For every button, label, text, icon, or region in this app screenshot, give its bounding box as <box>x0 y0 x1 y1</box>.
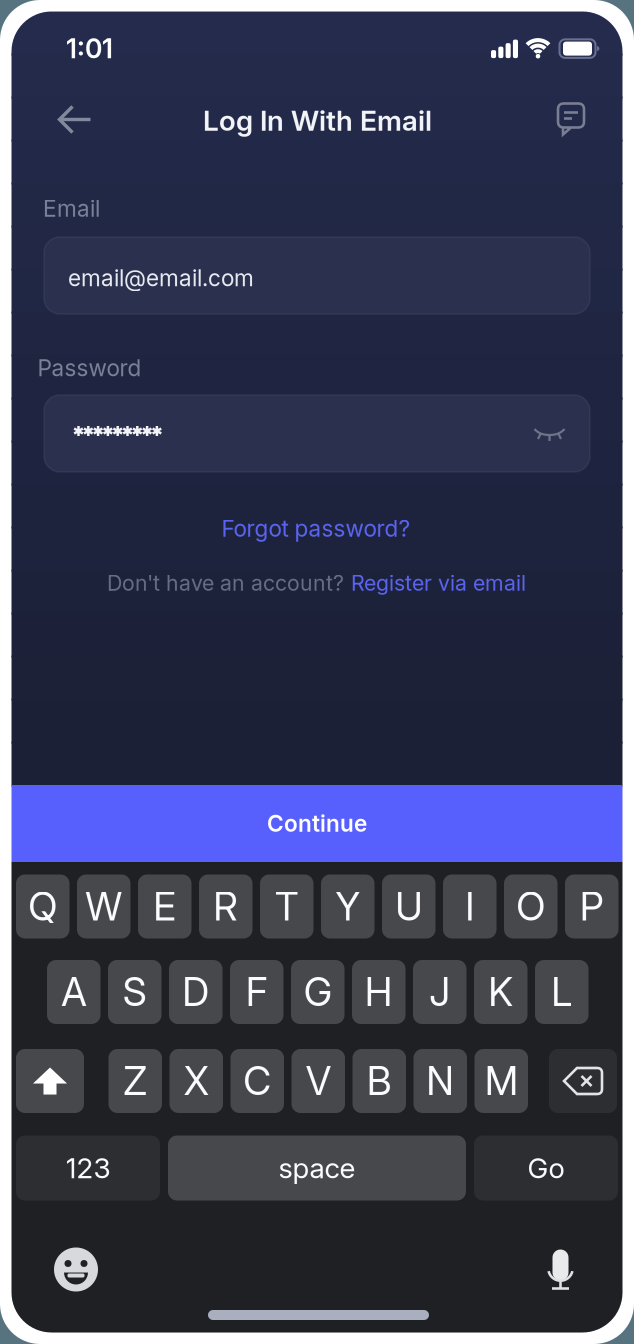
button[interactable]: G <box>291 960 344 1024</box>
button[interactable]: U <box>382 874 435 938</box>
staticText: C <box>243 1058 271 1104</box>
button[interactable]: L <box>535 960 588 1024</box>
staticText: J <box>429 969 450 1015</box>
staticText: X <box>184 1058 209 1104</box>
button[interactable]: space <box>168 1135 466 1200</box>
button[interactable] <box>533 426 565 446</box>
button[interactable] <box>52 99 96 139</box>
button[interactable]: R <box>199 874 252 938</box>
staticText: T <box>275 884 299 929</box>
button[interactable]: M <box>474 1049 528 1113</box>
staticText: 123 <box>65 1151 110 1184</box>
staticText: Go <box>527 1151 564 1184</box>
button[interactable]: email@email.com <box>44 237 590 314</box>
staticText: D <box>182 969 209 1015</box>
staticText: Email <box>43 195 100 222</box>
button[interactable]: 123 <box>16 1135 160 1200</box>
button[interactable]: A <box>47 960 100 1024</box>
button[interactable]: K <box>474 960 527 1024</box>
button[interactable]: N <box>413 1049 467 1113</box>
staticText: Continue <box>267 810 367 837</box>
staticText: S <box>123 969 147 1015</box>
button[interactable]: H <box>352 960 405 1024</box>
staticText: M <box>485 1058 518 1104</box>
staticText: U <box>395 884 422 929</box>
button[interactable]: Forgot password? <box>221 515 410 542</box>
staticText: P <box>580 884 604 929</box>
button[interactable]: D <box>169 960 222 1024</box>
staticText: I <box>465 884 474 929</box>
staticText: G <box>304 969 332 1015</box>
button[interactable]: Continue <box>11 785 622 862</box>
button[interactable]: V <box>291 1049 345 1113</box>
staticText: Q <box>28 884 57 929</box>
button[interactable]: T <box>260 874 313 938</box>
staticText: K <box>488 969 513 1015</box>
button[interactable]: J <box>413 960 466 1024</box>
staticText: O <box>516 884 545 929</box>
button[interactable]: C <box>230 1049 284 1113</box>
staticText: R <box>213 884 238 929</box>
button[interactable] <box>44 395 590 472</box>
button[interactable]: W <box>77 874 130 938</box>
staticText: L <box>551 969 572 1015</box>
button[interactable]: Q <box>16 874 69 938</box>
button[interactable] <box>547 1249 573 1291</box>
staticText: Log In With Email <box>203 104 432 137</box>
button[interactable]: S <box>108 960 161 1024</box>
staticText: Don't have an account? <box>107 570 344 596</box>
button[interactable]: B <box>352 1049 406 1113</box>
button[interactable]: Y <box>321 874 374 938</box>
staticText: F <box>246 969 268 1015</box>
button[interactable] <box>53 1246 99 1292</box>
staticText: Forgot password? <box>221 515 410 542</box>
staticText: Y <box>335 884 360 929</box>
button[interactable]: E <box>138 874 191 938</box>
button[interactable]: Z <box>108 1049 162 1113</box>
staticText: space <box>278 1151 355 1184</box>
staticText: Z <box>123 1058 147 1104</box>
staticText: V <box>306 1058 331 1104</box>
staticText: Register via email <box>351 570 526 596</box>
button[interactable]: I <box>443 874 496 938</box>
button[interactable]: F <box>230 960 283 1024</box>
staticText: E <box>153 884 176 929</box>
button[interactable]: P <box>565 874 618 938</box>
staticText: W <box>85 884 122 929</box>
staticText: Password <box>37 355 141 381</box>
button[interactable] <box>556 101 590 137</box>
staticText: N <box>426 1058 454 1104</box>
staticText: A <box>61 969 86 1015</box>
staticText: email@email.com <box>68 265 254 291</box>
button[interactable]: X <box>169 1049 223 1113</box>
button[interactable]: Go <box>474 1135 618 1200</box>
staticText: 1:01 <box>66 33 113 64</box>
button[interactable] <box>16 1049 84 1113</box>
button[interactable] <box>549 1049 617 1113</box>
staticText: B <box>367 1058 392 1104</box>
button[interactable]: O <box>504 874 557 938</box>
staticText: H <box>365 969 393 1015</box>
button[interactable]: Register via email <box>351 570 526 596</box>
